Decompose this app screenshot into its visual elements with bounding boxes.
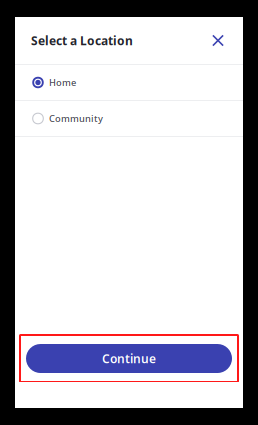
button[interactable]: Continue [26, 344, 232, 373]
button[interactable]: Close [208, 30, 228, 50]
staticText: Select a Location [31, 32, 133, 48]
button[interactable]: Community [15, 101, 243, 136]
staticText: Community [49, 112, 103, 125]
button[interactable]: Home [15, 65, 243, 100]
staticText: Continue [102, 350, 156, 366]
staticText: Home [49, 76, 76, 89]
